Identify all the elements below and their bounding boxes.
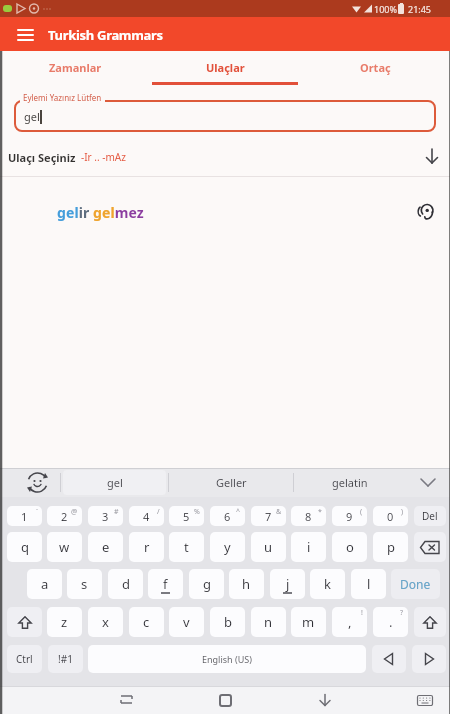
button[interactable]: !#1: [48, 645, 83, 673]
staticText: o: [346, 538, 354, 556]
button[interactable]: 4: [129, 506, 164, 526]
staticText: n: [264, 613, 273, 631]
button[interactable]: Ctrl: [7, 645, 42, 673]
button[interactable]: 1: [7, 506, 42, 526]
button[interactable]: [25, 470, 50, 495]
button[interactable]: Del: [414, 506, 446, 526]
button[interactable]: [414, 532, 446, 562]
staticText: 21:45: [408, 3, 432, 15]
button[interactable]: .: [373, 607, 408, 637]
button[interactable]: u: [251, 532, 286, 562]
staticText: g: [203, 575, 211, 593]
button[interactable]: o: [332, 532, 367, 562]
staticText: *: [318, 507, 322, 517]
staticText: (: [360, 507, 363, 517]
staticText: f: [163, 575, 168, 593]
staticText: 0: [387, 509, 394, 524]
button[interactable]: [372, 645, 406, 673]
button[interactable]: f: [148, 569, 183, 599]
button[interactable]: [420, 478, 436, 488]
button[interactable]: gelatin: [294, 468, 405, 497]
button[interactable]: Ulaçlar: [150, 51, 300, 84]
staticText: d: [122, 575, 130, 593]
staticText: Ctrl: [16, 652, 33, 666]
staticText: s: [81, 575, 88, 593]
button[interactable]: 5: [169, 506, 204, 526]
staticText: 1: [21, 509, 28, 524]
staticText: l: [367, 575, 371, 593]
button[interactable]: g: [189, 569, 224, 599]
button[interactable]: [414, 607, 446, 637]
staticText: 5: [183, 509, 190, 524]
button[interactable]: j: [270, 569, 305, 599]
staticText: r: [144, 538, 150, 556]
staticText: e: [102, 538, 110, 556]
staticText: @: [71, 507, 78, 517]
button[interactable]: Zamanlar: [0, 51, 150, 84]
button[interactable]: 2: [47, 506, 82, 526]
staticText: ^: [236, 507, 241, 517]
button[interactable]: gel: [14, 100, 436, 132]
button[interactable]: k: [310, 569, 345, 599]
button[interactable]: a: [27, 569, 62, 599]
button[interactable]: Geller: [169, 468, 293, 497]
button[interactable]: s: [67, 569, 102, 599]
button[interactable]: w: [47, 532, 82, 562]
button[interactable]: c: [129, 607, 164, 637]
button[interactable]: l: [351, 569, 386, 599]
button[interactable]: gel: [61, 468, 168, 497]
button[interactable]: b: [210, 607, 245, 637]
staticText: 6: [224, 509, 231, 524]
button[interactable]: [416, 202, 436, 222]
button[interactable]: [7, 607, 42, 637]
button[interactable]: 7: [251, 506, 286, 526]
button[interactable]: Done: [391, 569, 440, 599]
button[interactable]: ,: [332, 607, 367, 637]
button[interactable]: [412, 645, 446, 673]
button[interactable]: y: [210, 532, 245, 562]
button[interactable]: Ulaçı Seçiniz: [0, 144, 450, 170]
button[interactable]: x: [88, 607, 123, 637]
button[interactable]: e: [88, 532, 123, 562]
button[interactable]: i: [291, 532, 326, 562]
button[interactable]: 6: [210, 506, 245, 526]
button[interactable]: q: [7, 532, 42, 562]
button[interactable]: [12, 25, 38, 45]
button[interactable]: h: [229, 569, 264, 599]
staticText: x: [102, 613, 109, 631]
staticText: h: [242, 575, 251, 593]
button[interactable]: n: [251, 607, 286, 637]
button[interactable]: English (US): [88, 645, 366, 673]
staticText: Turkish Grammars: [48, 26, 163, 44]
button[interactable]: 8: [291, 506, 326, 526]
staticText: u: [264, 538, 273, 556]
button[interactable]: m: [291, 607, 326, 637]
button[interactable]: 3: [88, 506, 123, 526]
button[interactable]: [417, 695, 433, 706]
button[interactable]: t: [169, 532, 204, 562]
staticText: `: [36, 507, 38, 517]
button[interactable]: Ortaç: [300, 51, 450, 84]
staticText: ?: [400, 608, 404, 618]
staticText: gel: [107, 475, 123, 490]
button[interactable]: z: [47, 607, 82, 637]
staticText: Zamanlar: [49, 60, 102, 75]
staticText: 9: [346, 509, 353, 524]
staticText: j: [286, 575, 290, 593]
button[interactable]: [118, 694, 136, 706]
staticText: m: [302, 613, 315, 631]
button[interactable]: r: [129, 532, 164, 562]
staticText: 7: [265, 509, 272, 524]
button[interactable]: v: [169, 607, 204, 637]
staticText: gelatin: [332, 475, 368, 490]
button[interactable]: p: [373, 532, 408, 562]
button[interactable]: 0: [373, 506, 408, 526]
button[interactable]: [219, 694, 232, 707]
button[interactable]: [318, 694, 332, 707]
staticText: Eylemi Yazınız Lütfen: [23, 92, 102, 103]
button[interactable]: 9: [332, 506, 367, 526]
staticText: %: [194, 507, 200, 517]
button[interactable]: d: [108, 569, 143, 599]
staticText: ,: [348, 613, 352, 631]
staticText: 100%: [374, 3, 397, 15]
